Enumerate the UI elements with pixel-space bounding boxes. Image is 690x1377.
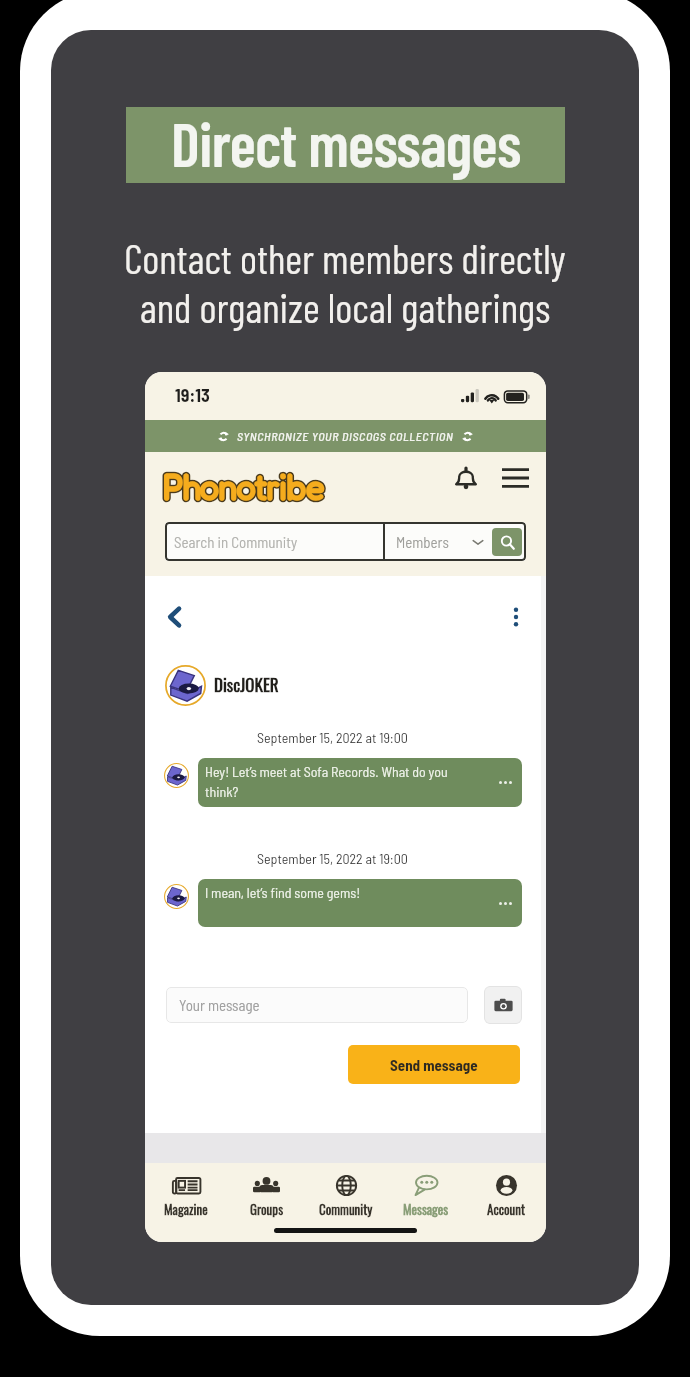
staticText: DiscJOKER [214,672,279,697]
button[interactable]: Search [492,528,522,556]
staticText: Groups [250,1199,283,1218]
button[interactable]: Camera [484,986,522,1024]
staticText: Direct messages [171,106,521,179]
button[interactable]: Messages [386,1174,466,1218]
staticText: Your message [179,996,260,1014]
button[interactable]: Phonotribe [163,467,325,507]
staticText: 19:13 [175,384,210,406]
staticText: Contact other members directly and organ… [95,233,595,331]
button[interactable]: Groups [226,1174,306,1218]
button[interactable]: Menu [498,461,532,495]
staticText: Phonotribe [163,467,325,507]
staticText: Hey! Let’s meet at Sofa Records. What do… [205,763,474,799]
button[interactable]: SYNCHRONIZE YOUR DISCOGS COLLECTION [145,420,546,452]
staticText: September 15, 2022 at 19:00 [257,850,408,867]
staticText: SYNCHRONIZE YOUR DISCOGS COLLECTION [237,429,454,443]
button[interactable]: Search in Community [165,522,383,561]
button[interactable]: Back [159,602,189,632]
staticText: Send message [390,1056,478,1074]
button[interactable]: Hey! Let’s meet at Sofa Records. What do… [198,758,522,807]
staticText: Community [319,1199,373,1218]
staticText: September 15, 2022 at 19:00 [257,729,408,746]
staticText: Messages [403,1199,449,1218]
button[interactable]: Your message [166,987,468,1023]
staticText: Search in Community [174,533,298,551]
button[interactable]: Members [385,522,526,561]
button[interactable]: Account [466,1174,546,1218]
button[interactable]: More options [501,602,531,632]
staticText: Members [396,533,449,551]
button[interactable]: Magazine [145,1174,226,1218]
staticText: I mean, let’s find some gems! [205,884,361,901]
button[interactable]: Send message [348,1045,520,1084]
button[interactable]: I mean, let’s find some gems! [198,879,522,927]
button[interactable]: Community [306,1174,386,1218]
button[interactable]: Notifications [449,461,483,495]
staticText: Phonotribe [163,467,325,507]
staticText: Magazine [164,1199,208,1218]
staticText: Phonotribe [163,467,325,507]
staticText: Account [487,1199,525,1218]
